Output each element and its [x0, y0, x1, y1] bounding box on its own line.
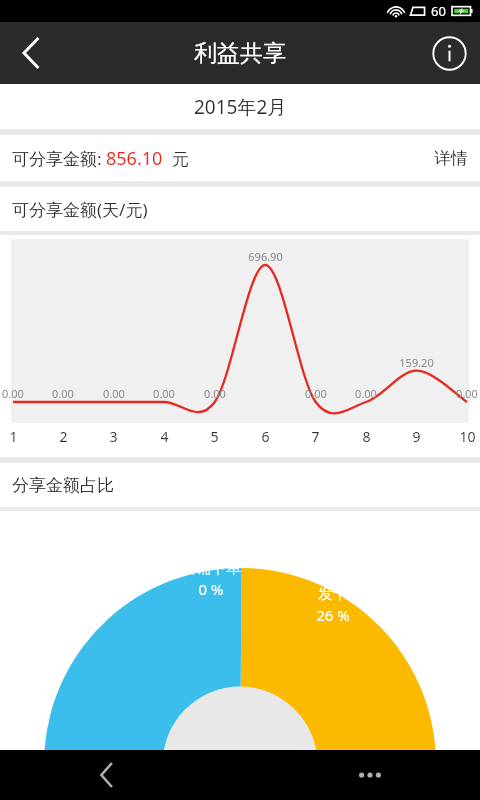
staticText: 0.00: [305, 386, 327, 401]
staticText: 4: [160, 427, 169, 446]
staticText: 856.10: [106, 146, 163, 171]
button[interactable]: 可分享金额:: [0, 135, 480, 181]
staticText: 发卡 26 %: [316, 585, 350, 625]
staticText: 8: [362, 427, 371, 446]
button[interactable]: 详情: [422, 135, 480, 181]
staticText: 7: [311, 427, 320, 446]
staticText: 店铺下单 0 %: [181, 559, 241, 599]
staticText: 分享金额占比: [12, 475, 114, 496]
staticText: 0.00: [52, 386, 74, 401]
staticText: 1: [9, 427, 18, 446]
staticText: 696.90: [248, 249, 283, 264]
button[interactable]: 店铺下单 0 %: [0, 511, 480, 750]
staticText: 9: [412, 427, 421, 446]
button[interactable]: Back: [82, 750, 132, 800]
staticText: 3: [109, 427, 118, 446]
staticText: 利益共享: [194, 39, 286, 68]
staticText: 0.00: [456, 386, 478, 401]
staticText: 0.00: [355, 386, 377, 401]
staticText: 159.20: [399, 355, 434, 370]
staticText: 2: [59, 427, 68, 446]
button[interactable]: Info: [418, 22, 480, 84]
button[interactable]: Back: [0, 22, 64, 84]
staticText: 60: [431, 2, 446, 20]
staticText: 6: [261, 427, 270, 446]
staticText: 2015年2月: [194, 94, 287, 120]
staticText: 详情: [434, 148, 468, 169]
staticText: 可分享金额:: [12, 147, 106, 170]
button[interactable]: 2015年2月: [0, 84, 480, 129]
staticText: 0.00: [2, 386, 24, 401]
staticText: 元: [163, 147, 189, 170]
staticText: 0.00: [103, 386, 125, 401]
button[interactable]: More options: [345, 750, 395, 800]
staticText: 0.00: [204, 386, 226, 401]
staticText: 10: [459, 427, 476, 446]
staticText: 可分享金额(天/元): [12, 198, 148, 221]
staticText: 5: [210, 427, 219, 446]
staticText: 0.00: [153, 386, 175, 401]
button[interactable]: 0.00: [0, 235, 480, 457]
